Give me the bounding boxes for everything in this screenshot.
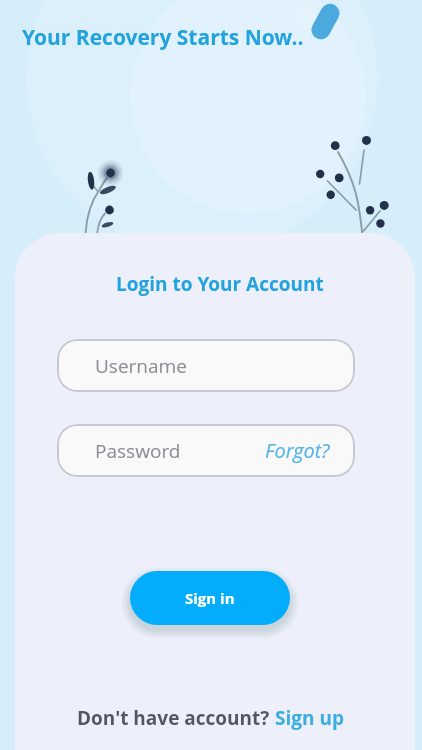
staticText: Sign in [185, 588, 235, 608]
staticText: Username [95, 353, 187, 379]
button[interactable]: Password [57, 424, 355, 477]
staticText: Login to Your Account [116, 271, 324, 297]
staticText: Your Recovery Starts Now.. [22, 23, 304, 52]
button[interactable]: Username [57, 339, 355, 392]
button[interactable]: Sign in [130, 571, 290, 625]
staticText: Don't have account? [77, 705, 275, 731]
button[interactable]: Sign up [275, 705, 344, 731]
staticText: Password [95, 438, 181, 464]
button[interactable]: Forgot? [265, 437, 330, 464]
